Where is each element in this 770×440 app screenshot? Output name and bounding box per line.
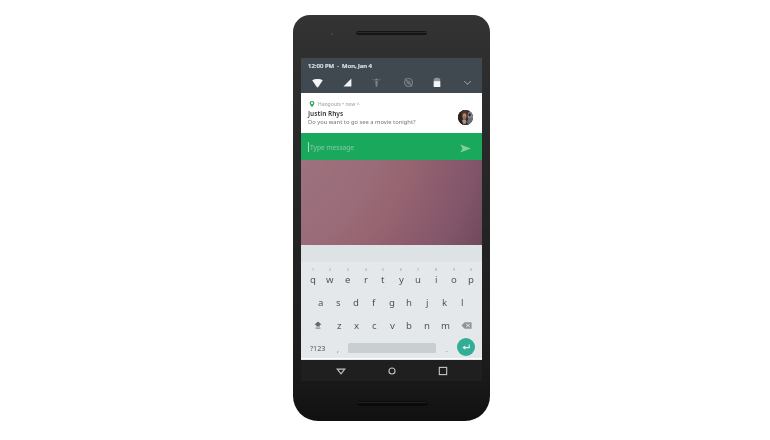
staticText: f	[372, 296, 376, 309]
button[interactable]: n	[419, 317, 435, 333]
staticText: m	[441, 319, 450, 332]
button[interactable]: o	[446, 271, 462, 287]
button[interactable]: 5	[375, 261, 391, 277]
staticText: u	[415, 273, 421, 286]
button[interactable]: Expand	[459, 74, 475, 90]
staticText: b	[406, 319, 412, 332]
other: Auto rotate off	[404, 78, 413, 87]
button[interactable]: q	[305, 271, 321, 287]
staticText: 8	[435, 267, 438, 272]
staticText: ?123	[310, 343, 326, 353]
staticText: 2	[329, 267, 332, 272]
staticText: Do you want to go see a movie tonight?	[308, 118, 416, 126]
button[interactable]: v	[384, 317, 400, 333]
staticText: s	[336, 296, 341, 309]
button[interactable]: .	[441, 341, 453, 357]
staticText: c	[372, 319, 377, 332]
button[interactable]: Battery	[429, 74, 445, 90]
other: Send	[460, 143, 471, 154]
button[interactable]: 3	[340, 261, 356, 277]
button[interactable]: 7	[410, 261, 426, 277]
button[interactable]: p	[463, 271, 479, 287]
staticText: 3	[347, 267, 350, 272]
other: Expand	[463, 78, 472, 87]
button[interactable]	[456, 317, 476, 333]
staticText: Hangouts • now ^	[318, 101, 360, 108]
button[interactable]: 4	[358, 261, 374, 277]
button[interactable]: w	[322, 271, 338, 287]
staticText: o	[451, 273, 457, 286]
button[interactable]: Hangouts • now ^	[301, 93, 482, 133]
button[interactable]: Auto rotate off	[400, 74, 416, 90]
button[interactable]: x	[349, 317, 365, 333]
staticText: p	[468, 273, 474, 286]
button[interactable]: 8	[428, 261, 444, 277]
staticText: x	[354, 319, 360, 332]
staticText: j	[426, 296, 429, 309]
button[interactable]: i	[428, 271, 444, 287]
button[interactable]: Home	[383, 360, 401, 381]
button[interactable]: m	[437, 317, 453, 333]
button[interactable]: b	[401, 317, 417, 333]
staticText: a	[318, 296, 324, 309]
button[interactable]: g	[384, 294, 400, 310]
button[interactable]: z	[331, 317, 347, 333]
button[interactable]: t	[375, 271, 391, 287]
other: Battery	[432, 77, 442, 87]
button[interactable]: a	[313, 294, 329, 310]
button[interactable]: Recent apps	[434, 360, 452, 381]
button[interactable]: Back	[332, 360, 350, 381]
button[interactable]: Type message	[301, 133, 482, 160]
staticText: y	[399, 273, 404, 286]
staticText: e	[345, 273, 351, 286]
button[interactable]: 2	[322, 261, 338, 277]
staticText: h	[406, 296, 412, 309]
button[interactable]: Enter	[457, 338, 475, 356]
button[interactable]: Flashlight	[368, 74, 384, 90]
staticText: 6	[400, 267, 403, 272]
staticText: n	[424, 319, 430, 332]
button[interactable]: f	[366, 294, 382, 310]
staticText: w	[326, 273, 334, 286]
staticText: Type message	[310, 143, 355, 152]
staticText: d	[353, 296, 359, 309]
staticText: v	[390, 319, 395, 332]
button[interactable]: c	[366, 317, 382, 333]
button[interactable]: 0	[463, 261, 479, 277]
button[interactable]: ,	[332, 341, 344, 357]
button[interactable]: y	[393, 271, 409, 287]
staticText: 12:00 PM · Mon, Jan 4	[308, 62, 373, 70]
staticText: z	[337, 319, 342, 332]
button[interactable]: s	[330, 294, 346, 310]
staticText: k	[442, 296, 448, 309]
button[interactable]: k	[437, 294, 453, 310]
button[interactable]: r	[358, 271, 374, 287]
button[interactable]: 9	[446, 261, 462, 277]
staticText: ,	[337, 345, 339, 354]
staticText: .	[446, 345, 448, 354]
other: Wi-Fi	[312, 77, 323, 88]
button[interactable]: Wi-Fi	[309, 74, 325, 90]
staticText: 7	[417, 267, 420, 272]
other: Flashlight	[372, 78, 381, 87]
button[interactable]: Mobile signal	[339, 74, 355, 90]
staticText: 5	[382, 267, 385, 272]
button[interactable]: l	[454, 294, 470, 310]
staticText: t	[381, 273, 385, 286]
staticText: q	[310, 273, 316, 286]
button[interactable]: j	[419, 294, 435, 310]
staticText: l	[461, 296, 464, 309]
button[interactable]: e	[340, 271, 356, 287]
button[interactable]	[309, 317, 327, 333]
button[interactable]: 6	[393, 261, 409, 277]
button[interactable]: u	[410, 271, 426, 287]
staticText: g	[389, 296, 395, 309]
staticText: Justin Rhys	[308, 109, 344, 118]
button[interactable]: 1	[305, 261, 321, 277]
button[interactable]: d	[348, 294, 364, 310]
staticText: 0	[470, 267, 473, 272]
button[interactable]: h	[401, 294, 417, 310]
staticText: 9	[453, 267, 456, 272]
button[interactable]: ?123	[307, 340, 329, 356]
